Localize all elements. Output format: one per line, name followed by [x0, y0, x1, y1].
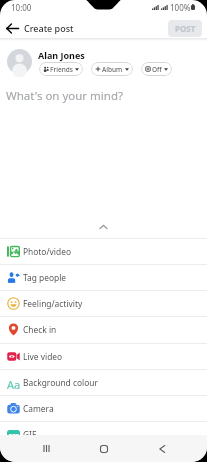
button[interactable]: Back: [2, 18, 23, 39]
button[interactable]: Home: [93, 438, 114, 459]
staticText: Photo/video: [23, 246, 71, 257]
button[interactable]: Camera: [0, 395, 207, 421]
staticText: Live video: [23, 351, 63, 362]
staticText: What's on your mind?: [6, 88, 123, 104]
button[interactable]: Feeling/activity: [0, 290, 207, 316]
button[interactable]: Live video: [0, 343, 207, 369]
button[interactable]: Friends: [39, 62, 83, 76]
staticText: 10:00: [11, 2, 32, 13]
button[interactable]: Check in: [0, 316, 207, 342]
button[interactable]: Recents: [36, 438, 57, 459]
staticText: Background colour: [23, 377, 98, 388]
staticText: Camera: [23, 403, 54, 414]
staticText: GIF: [23, 429, 37, 440]
staticText: Alan Jones: [38, 49, 85, 61]
staticText: Check in: [23, 324, 57, 335]
button[interactable]: Aa: [0, 369, 207, 395]
staticText: Off: [152, 65, 162, 74]
staticText: Tag people: [23, 272, 67, 283]
button[interactable]: Off: [141, 62, 172, 76]
button[interactable]: Back: [151, 438, 172, 459]
staticText: POST: [175, 23, 196, 34]
staticText: Aa: [7, 377, 21, 391]
staticText: Create post: [24, 22, 74, 34]
staticText: Album: [102, 65, 123, 74]
staticText: Feeling/activity: [23, 298, 83, 309]
button[interactable]: Tag people: [0, 264, 207, 290]
button[interactable]: POST: [168, 20, 202, 37]
button[interactable]: GIF: [0, 421, 207, 447]
button[interactable]: Expand sheet: [0, 218, 207, 236]
staticText: GIF: [8, 432, 19, 440]
staticText: 100%: [170, 2, 191, 13]
button[interactable]: Album: [91, 62, 133, 76]
button[interactable]: Photo/video: [0, 238, 207, 264]
staticText: Friends: [50, 65, 73, 74]
